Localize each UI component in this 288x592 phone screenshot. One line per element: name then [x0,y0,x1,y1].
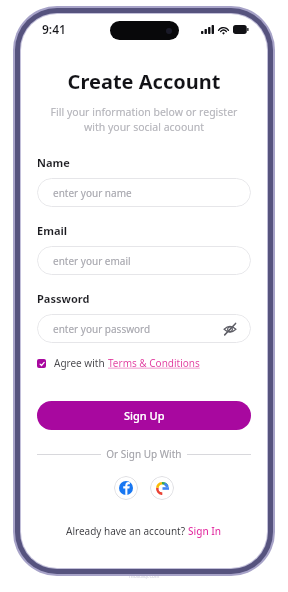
staticText: Agree with [54,356,108,370]
button[interactable]: enter your password [37,314,251,343]
staticText: Sign Up [124,408,165,423]
staticText: enter your name [53,186,132,200]
staticText: Password [37,291,90,306]
staticText: 9:41 [42,21,66,37]
button[interactable]: Sign In [188,524,222,538]
staticText: Create Account [21,68,267,95]
button[interactable]: enter your email [37,246,251,275]
staticText: مستقل [120,557,168,572]
button[interactable]: Sign up with Google [150,476,174,500]
staticText: enter your email [53,254,131,268]
button[interactable]: Agree with [37,356,200,370]
button[interactable]: enter your name [37,178,251,207]
staticText: enter your password [53,322,151,336]
staticText: Email [37,223,68,238]
staticText: Fill your information below or register … [37,105,251,134]
staticText: mostaql.com [129,573,160,580]
staticText: Already have an account? [66,524,188,538]
staticText: Or Sign Up With [101,447,187,461]
staticText: Name [37,155,70,170]
button[interactable]: Terms & Conditions [108,356,200,370]
button[interactable]: Sign Up [37,401,251,430]
button[interactable]: Show password [223,322,237,336]
button[interactable]: Sign up with Facebook [114,476,138,500]
